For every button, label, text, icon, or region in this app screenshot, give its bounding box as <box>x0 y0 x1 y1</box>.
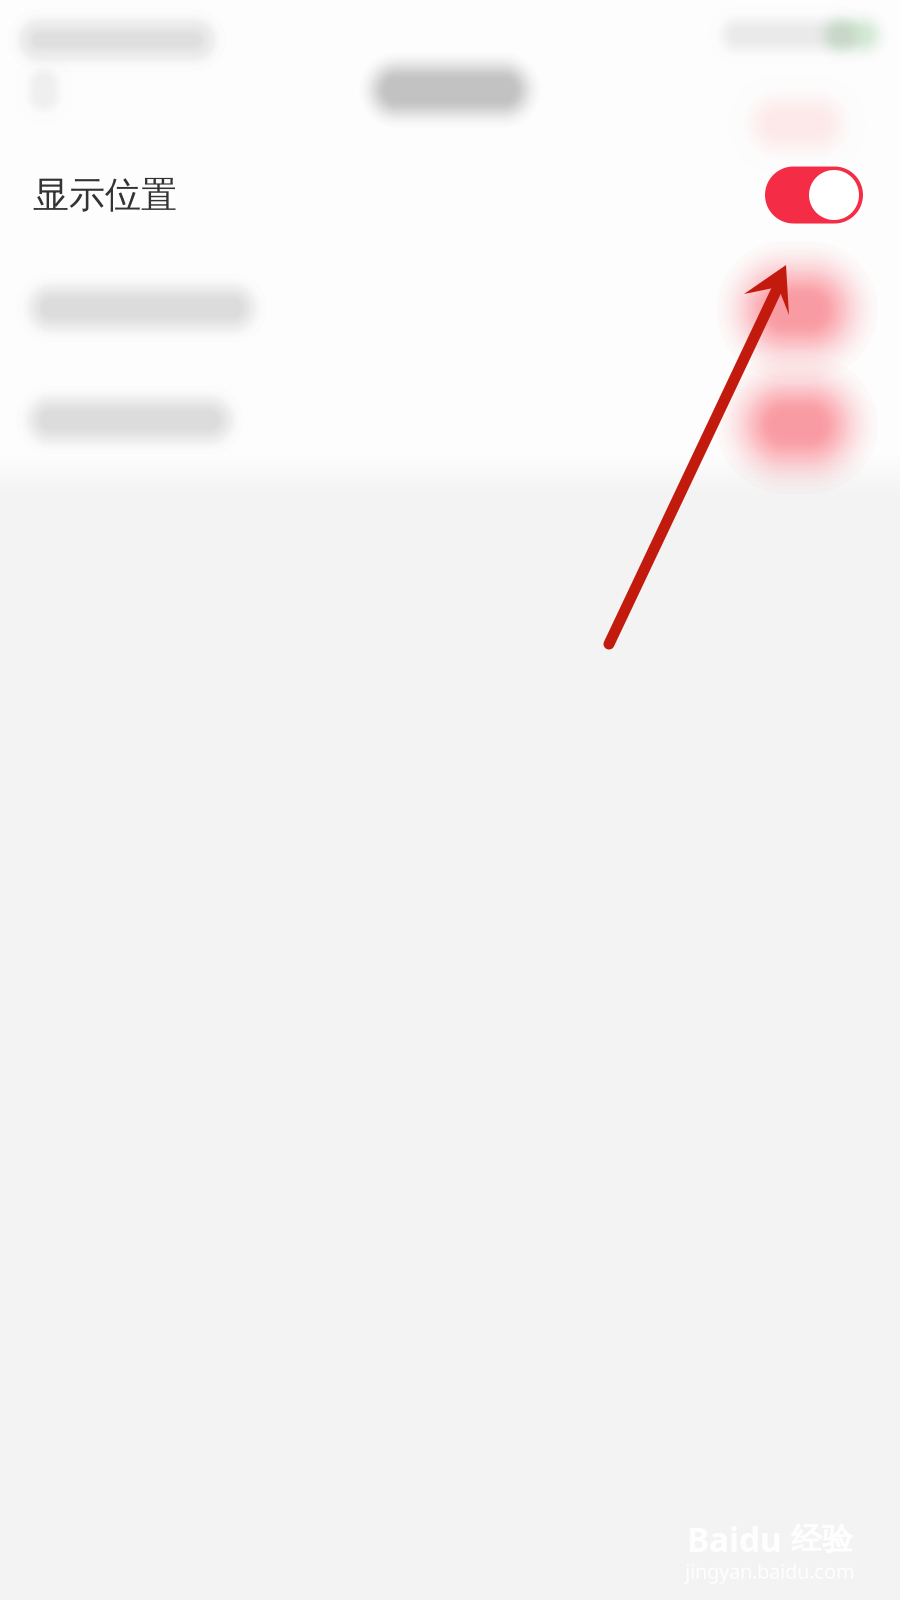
staticText: jingyan.baidu.com <box>685 1558 855 1584</box>
staticText: 显示位置 <box>33 173 177 217</box>
staticText: Baidu <box>687 1517 782 1561</box>
button[interactable]: 显示位置 <box>0 139 900 251</box>
staticText: 经验 <box>782 1520 853 1558</box>
